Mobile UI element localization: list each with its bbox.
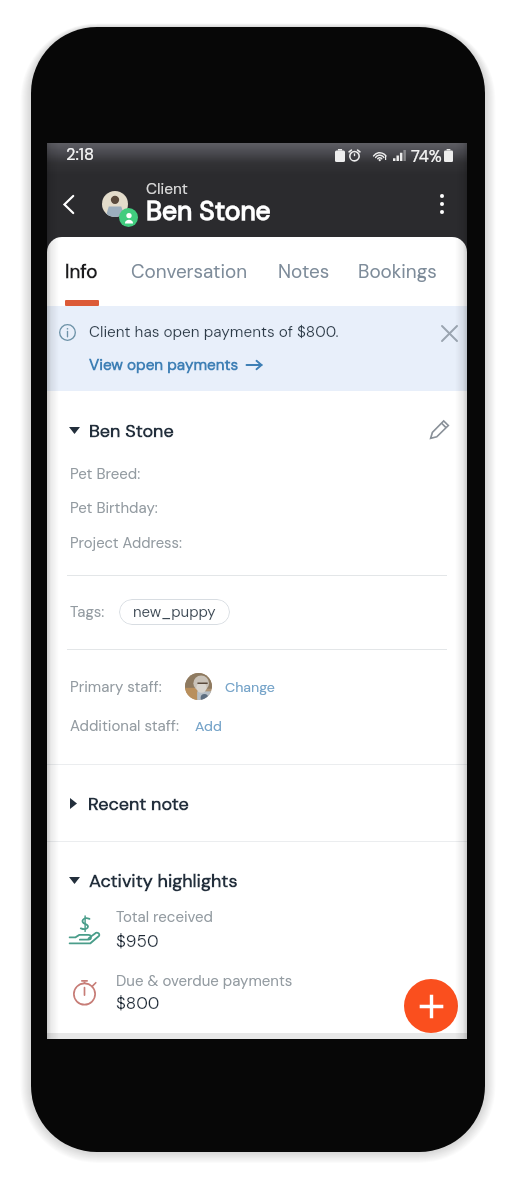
button[interactable]: More options (427, 189, 457, 219)
staticText: Total received (116, 907, 213, 927)
button[interactable]: Dismiss (431, 315, 467, 351)
staticText: $950 (116, 930, 159, 952)
staticText: new_puppy (133, 602, 216, 622)
button[interactable]: Activity highlights (69, 867, 238, 893)
staticText: Client (146, 179, 188, 197)
button[interactable]: Conversation (123, 253, 256, 289)
staticText: Conversation (131, 259, 248, 284)
button[interactable]: Ben Stone (69, 417, 174, 443)
staticText: Pet Birthday: (70, 498, 158, 518)
staticText: Bookings (358, 259, 437, 284)
staticText: Due & overdue payments (116, 971, 293, 991)
staticText: Activity highlights (89, 869, 238, 892)
staticText: Info (65, 259, 98, 284)
staticText: Client has open payments of $800. (89, 322, 339, 342)
button[interactable]: Edit (422, 412, 456, 446)
button[interactable]: View open payments (89, 355, 262, 375)
staticText: Pet Breed: (70, 464, 141, 484)
button[interactable]: Add (404, 979, 458, 1033)
staticText: Project Address: (70, 533, 182, 552)
staticText: View open payments (89, 355, 239, 375)
staticText: Primary staff: (70, 677, 162, 697)
staticText: Ben Stone (89, 419, 174, 442)
staticText: Notes (278, 259, 330, 284)
staticText: 2:18 (66, 144, 95, 164)
button[interactable]: Change (225, 678, 275, 696)
button[interactable]: Back (52, 187, 86, 221)
button[interactable]: Notes (270, 253, 338, 289)
button[interactable]: Bookings (350, 253, 445, 289)
button[interactable]: new_puppy (119, 599, 230, 625)
staticText: Tags: (70, 602, 105, 622)
staticText: Ben Stone (146, 194, 271, 226)
staticText: Recent note (88, 792, 189, 815)
staticText: 74% (411, 146, 442, 164)
button[interactable]: Info (57, 253, 106, 289)
staticText: $800 (116, 992, 160, 1014)
button[interactable]: Add (195, 717, 222, 735)
button[interactable]: Recent note (70, 790, 189, 816)
staticText: Additional staff: (70, 716, 179, 736)
